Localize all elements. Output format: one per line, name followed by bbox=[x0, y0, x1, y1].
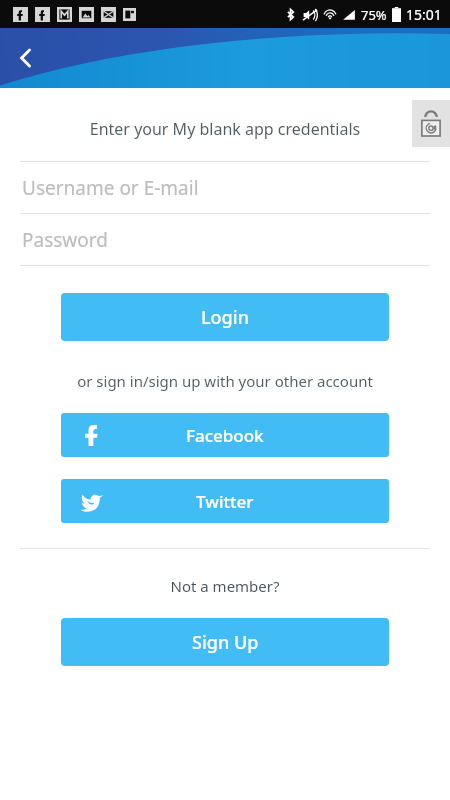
button[interactable]: Twitter bbox=[61, 479, 389, 523]
button[interactable]: Facebook bbox=[61, 413, 389, 457]
staticText: Facebook bbox=[186, 424, 264, 447]
button[interactable]: Password bbox=[0, 214, 450, 265]
staticText: 75% bbox=[361, 6, 387, 24]
staticText: or sign in/sign up with your other accou… bbox=[0, 371, 450, 391]
staticText: Not a member? bbox=[0, 576, 450, 596]
staticText: Password bbox=[22, 227, 108, 253]
button[interactable]: Sign Up bbox=[61, 618, 389, 666]
staticText: Username or E-mail bbox=[22, 175, 199, 201]
button[interactable]: Login bbox=[61, 293, 389, 341]
button[interactable]: Back bbox=[4, 36, 48, 80]
button[interactable]: Username or E-mail bbox=[0, 162, 450, 213]
staticText: Login bbox=[201, 305, 249, 330]
staticText: Enter your My blank app credentials bbox=[0, 118, 450, 140]
staticText: Sign Up bbox=[192, 630, 259, 655]
staticText: 15:01 bbox=[406, 5, 442, 24]
button[interactable]: Saved password bbox=[412, 100, 450, 147]
staticText: Twitter bbox=[196, 490, 254, 513]
